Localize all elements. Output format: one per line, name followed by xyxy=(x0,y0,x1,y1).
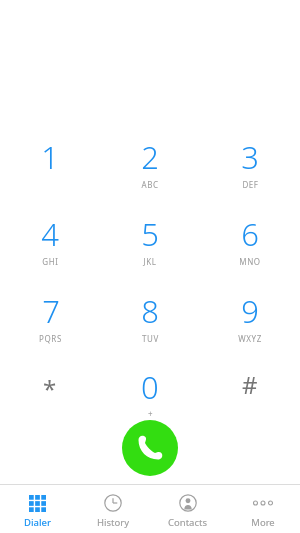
button[interactable]: Contacts xyxy=(150,485,225,533)
staticText: History xyxy=(97,516,129,529)
staticText: MNO xyxy=(239,256,261,267)
staticText: Contacts xyxy=(168,516,207,529)
button[interactable]: 8 xyxy=(100,290,200,366)
staticText: + xyxy=(148,408,153,416)
staticText: 5 xyxy=(141,213,159,255)
staticText: * xyxy=(43,372,57,405)
staticText: 7 xyxy=(42,290,60,332)
staticText: ABC xyxy=(141,179,159,190)
staticText: Dialer xyxy=(24,516,51,529)
staticText: # xyxy=(242,368,258,401)
button[interactable]: 2 xyxy=(100,136,200,213)
button[interactable]: 0 xyxy=(100,366,200,416)
button[interactable]: * xyxy=(0,366,100,416)
button[interactable]: 4 xyxy=(0,213,100,290)
staticText: 1 xyxy=(41,136,59,178)
staticText: 4 xyxy=(41,213,59,255)
button[interactable]: # xyxy=(200,366,300,416)
staticText: WXYZ xyxy=(238,333,262,344)
staticText: 6 xyxy=(241,213,259,255)
staticText: GHI xyxy=(42,256,59,267)
staticText: 0 xyxy=(141,366,159,408)
staticText: 8 xyxy=(141,290,159,332)
staticText: More xyxy=(251,516,275,529)
button[interactable]: History xyxy=(75,485,150,533)
button[interactable]: More xyxy=(225,485,300,533)
staticText: 3 xyxy=(241,136,259,178)
button[interactable]: 7 xyxy=(0,290,100,366)
button[interactable]: 3 xyxy=(200,136,300,213)
button[interactable]: Call xyxy=(122,420,178,476)
staticText: 2 xyxy=(141,136,159,178)
staticText: JKL xyxy=(143,256,157,267)
staticText: PQRS xyxy=(39,333,62,344)
staticText: 9 xyxy=(241,290,259,332)
button[interactable]: 6 xyxy=(200,213,300,290)
staticText: DEF xyxy=(242,179,259,190)
button[interactable]: 9 xyxy=(200,290,300,366)
button[interactable]: 5 xyxy=(100,213,200,290)
button[interactable]: Dialer xyxy=(0,485,75,533)
button[interactable]: 1 xyxy=(0,136,100,213)
staticText: TUV xyxy=(142,333,159,344)
